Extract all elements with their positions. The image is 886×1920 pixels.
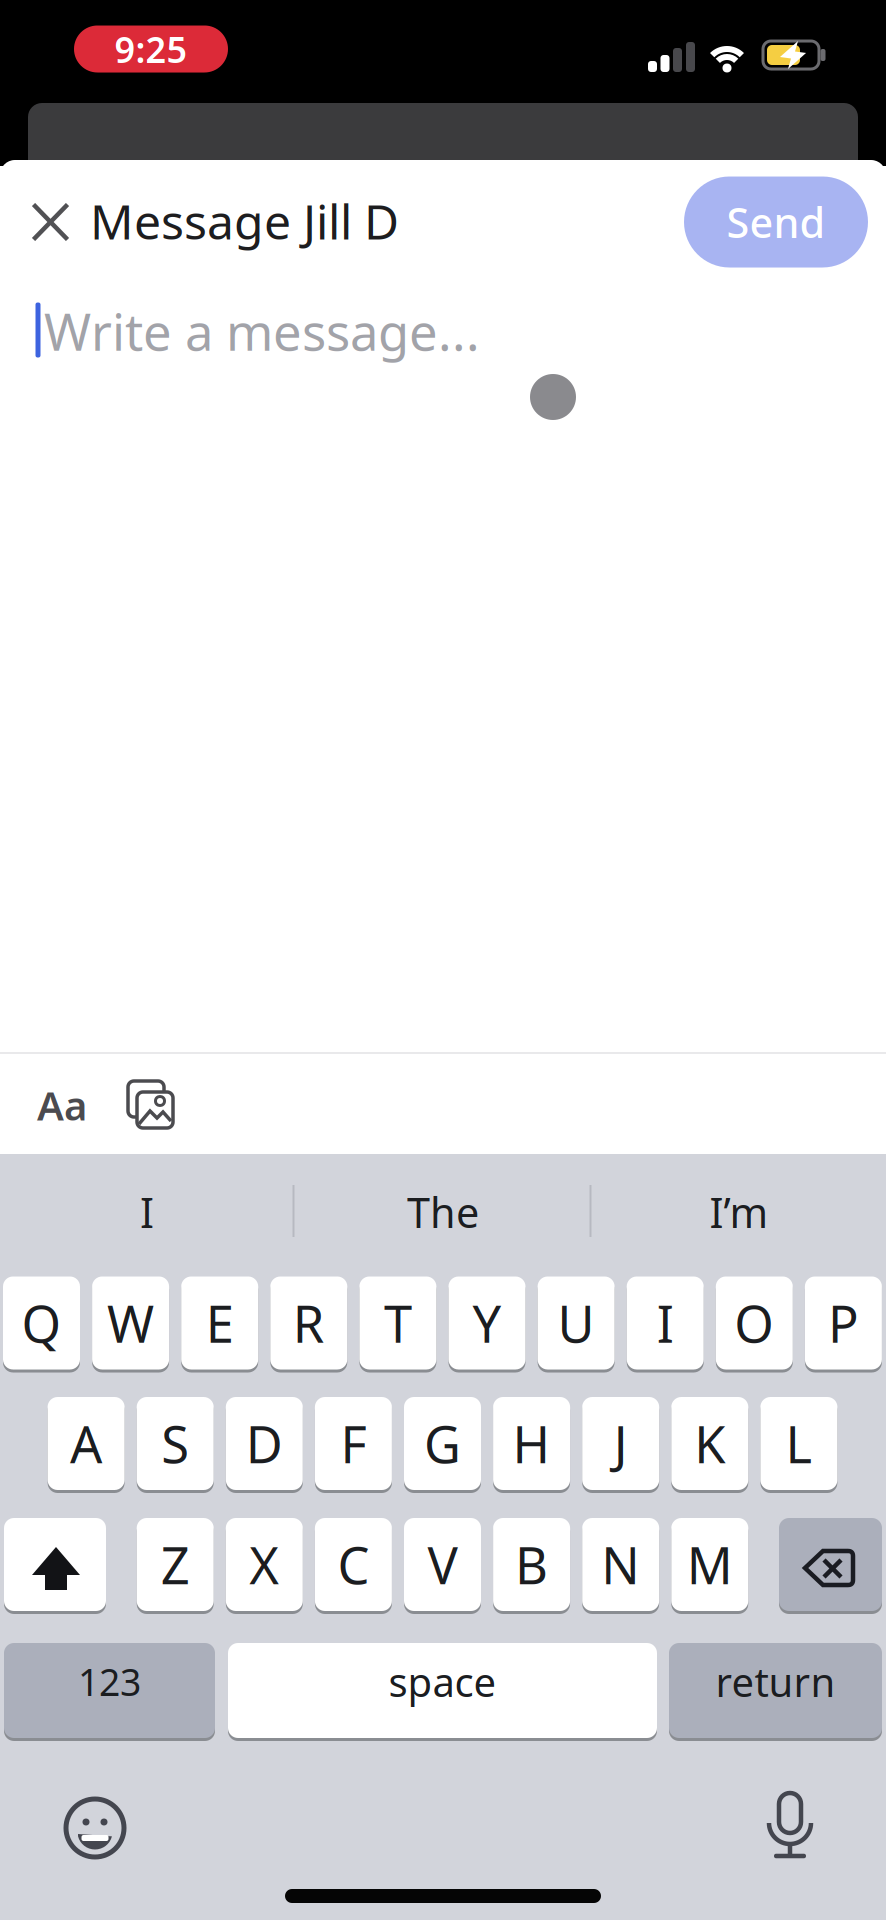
button[interactable]: A <box>48 1397 125 1490</box>
staticText: J <box>614 1410 628 1477</box>
button[interactable]: B <box>493 1518 570 1611</box>
staticText: T <box>384 1289 412 1357</box>
button[interactable] <box>62 1795 128 1861</box>
button[interactable]: 123 <box>4 1643 215 1738</box>
staticText: G <box>424 1410 461 1477</box>
staticText: Aa <box>37 1078 87 1131</box>
staticText: P <box>828 1289 859 1357</box>
button[interactable]: Aa <box>7 1073 117 1137</box>
staticText: Send <box>726 195 825 249</box>
button[interactable]: K <box>671 1397 748 1490</box>
staticText: return <box>715 1655 835 1708</box>
staticText: I <box>140 1185 154 1239</box>
button[interactable]: J <box>582 1397 659 1490</box>
staticText: I’m <box>709 1185 768 1239</box>
button[interactable]: R <box>270 1276 347 1369</box>
button[interactable]: Send <box>684 176 868 267</box>
staticText: M <box>687 1531 733 1598</box>
staticText: S <box>161 1410 189 1477</box>
button[interactable] <box>124 1078 180 1134</box>
staticText: N <box>601 1531 640 1598</box>
staticText: Write a message... <box>44 297 480 365</box>
button[interactable]: I <box>627 1276 704 1369</box>
button[interactable]: The <box>303 1162 583 1262</box>
button[interactable]: M <box>671 1518 748 1611</box>
staticText: Z <box>161 1531 190 1598</box>
button[interactable]: V <box>404 1518 481 1611</box>
button[interactable]: D <box>226 1397 303 1490</box>
button[interactable] <box>28 200 72 244</box>
staticText: R <box>293 1289 325 1357</box>
staticText: Y <box>472 1289 501 1357</box>
button[interactable]: N <box>582 1518 659 1611</box>
button[interactable]: S <box>137 1397 214 1490</box>
staticText: V <box>427 1531 457 1598</box>
button[interactable]: space <box>228 1643 657 1738</box>
staticText: O <box>734 1289 774 1357</box>
staticText: C <box>337 1531 369 1598</box>
button[interactable]: Write a message... <box>30 293 856 367</box>
button[interactable]: F <box>315 1397 392 1490</box>
staticText: K <box>694 1410 725 1477</box>
staticText: H <box>513 1410 551 1477</box>
button[interactable] <box>4 1518 106 1611</box>
button[interactable]: return <box>669 1643 882 1738</box>
button[interactable]: P <box>805 1276 882 1369</box>
button[interactable]: W <box>92 1276 169 1369</box>
button[interactable]: U <box>538 1276 615 1369</box>
button[interactable] <box>762 1790 818 1862</box>
button[interactable]: I’m <box>599 1162 879 1262</box>
staticText: W <box>107 1289 154 1357</box>
staticText: U <box>558 1289 595 1357</box>
button[interactable]: T <box>359 1276 436 1369</box>
staticText: The <box>407 1185 479 1239</box>
staticText: space <box>388 1655 496 1708</box>
staticText: A <box>70 1410 102 1477</box>
staticText: E <box>206 1289 234 1357</box>
staticText: D <box>246 1410 283 1477</box>
button[interactable]: O <box>716 1276 793 1369</box>
staticText: X <box>249 1531 279 1598</box>
button[interactable]: X <box>226 1518 303 1611</box>
button[interactable]: I <box>7 1162 287 1262</box>
staticText: B <box>515 1531 548 1598</box>
button[interactable]: H <box>493 1397 570 1490</box>
staticText: F <box>340 1410 366 1477</box>
button[interactable]: Y <box>448 1276 525 1369</box>
staticText: I <box>657 1289 674 1357</box>
staticText: Q <box>21 1289 61 1357</box>
staticText: 9:25 <box>114 25 187 73</box>
button[interactable]: Z <box>137 1518 214 1611</box>
staticText: Message Jill D <box>90 189 399 253</box>
button[interactable]: G <box>404 1397 481 1490</box>
staticText: 123 <box>78 1657 141 1706</box>
button[interactable] <box>779 1518 882 1611</box>
staticText: L <box>785 1410 812 1477</box>
button[interactable]: E <box>181 1276 258 1369</box>
button[interactable]: C <box>315 1518 392 1611</box>
button[interactable]: Q <box>3 1276 80 1369</box>
button[interactable]: L <box>760 1397 837 1490</box>
